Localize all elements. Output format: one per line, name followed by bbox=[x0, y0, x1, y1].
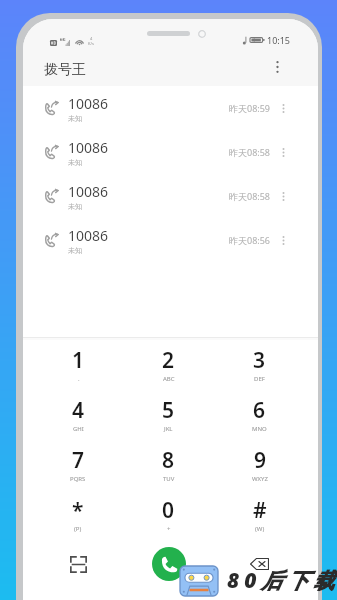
button[interactable]: * bbox=[33, 496, 123, 546]
staticText: 10086 bbox=[68, 138, 109, 157]
staticText: 10086 bbox=[68, 226, 109, 245]
button[interactable]: 3 bbox=[214, 346, 305, 396]
staticText: 5 bbox=[162, 396, 175, 425]
button[interactable]: Scan bbox=[33, 546, 123, 582]
button[interactable]: 4 bbox=[33, 396, 123, 446]
button[interactable]: 9 bbox=[214, 446, 305, 496]
staticText: 4 bbox=[72, 396, 85, 425]
staticText: 昨天08:58 bbox=[229, 146, 271, 158]
staticText: 未知 bbox=[68, 114, 82, 123]
staticText: ABC bbox=[163, 375, 175, 383]
button[interactable]: Call bbox=[123, 546, 214, 582]
staticText: 未知 bbox=[68, 158, 82, 167]
button[interactable]: 10086 bbox=[23, 130, 318, 174]
staticText: * bbox=[72, 496, 84, 525]
staticText: GHI bbox=[73, 425, 84, 433]
staticText: 8 bbox=[162, 446, 175, 475]
staticText: WXYZ bbox=[252, 475, 268, 483]
staticText: (W) bbox=[255, 525, 265, 533]
staticText: (P) bbox=[74, 525, 82, 533]
staticText: MNO bbox=[252, 425, 267, 433]
staticText: . bbox=[78, 375, 80, 383]
staticText: 未知 bbox=[68, 246, 82, 255]
staticText: 未知 bbox=[68, 202, 82, 211]
staticText: 昨天08:56 bbox=[229, 234, 271, 246]
button[interactable]: 10086 bbox=[23, 86, 318, 130]
staticText: 3 bbox=[253, 346, 266, 375]
button[interactable]: 8 bbox=[123, 446, 214, 496]
staticText: 0 bbox=[162, 496, 175, 525]
staticText: PQRS bbox=[70, 475, 86, 483]
button[interactable]: 10086 bbox=[23, 218, 318, 262]
staticText: 10086 bbox=[68, 94, 109, 113]
staticText: JKL bbox=[164, 425, 173, 433]
button[interactable]: Call entry options bbox=[276, 233, 290, 247]
staticText: 10086 bbox=[68, 182, 109, 201]
button[interactable]: More options bbox=[269, 59, 285, 75]
staticText: 10:15 bbox=[267, 34, 291, 46]
staticText: 80后下载 bbox=[227, 566, 337, 595]
staticText: 6 bbox=[253, 396, 266, 425]
button[interactable]: 1 bbox=[33, 346, 123, 396]
staticText: 昨天08:59 bbox=[229, 102, 271, 114]
staticText: 4 bbox=[90, 36, 93, 41]
staticText: 拨号王 bbox=[44, 61, 86, 79]
staticText: 昨天08:58 bbox=[229, 190, 271, 202]
staticText: 7 bbox=[72, 446, 85, 475]
button[interactable]: Call entry options bbox=[276, 189, 290, 203]
staticText: TUV bbox=[163, 475, 175, 483]
staticText: 1 bbox=[72, 346, 85, 375]
button[interactable]: Call entry options bbox=[276, 101, 290, 115]
button[interactable]: 6 bbox=[214, 396, 305, 446]
staticText: # bbox=[253, 496, 267, 525]
staticText: DEF bbox=[254, 375, 265, 383]
button[interactable]: 10086 bbox=[23, 174, 318, 218]
button[interactable]: 7 bbox=[33, 446, 123, 496]
button[interactable]: Delete bbox=[214, 546, 305, 582]
button[interactable]: 5 bbox=[123, 396, 214, 446]
staticText: + bbox=[167, 525, 171, 533]
staticText: 9 bbox=[254, 446, 267, 475]
staticText: 2 bbox=[162, 346, 175, 375]
button[interactable]: 2 bbox=[123, 346, 214, 396]
button[interactable]: # bbox=[214, 496, 305, 546]
button[interactable]: Call entry options bbox=[276, 145, 290, 159]
button[interactable]: 0 bbox=[123, 496, 214, 546]
staticText: K/s bbox=[88, 41, 94, 46]
